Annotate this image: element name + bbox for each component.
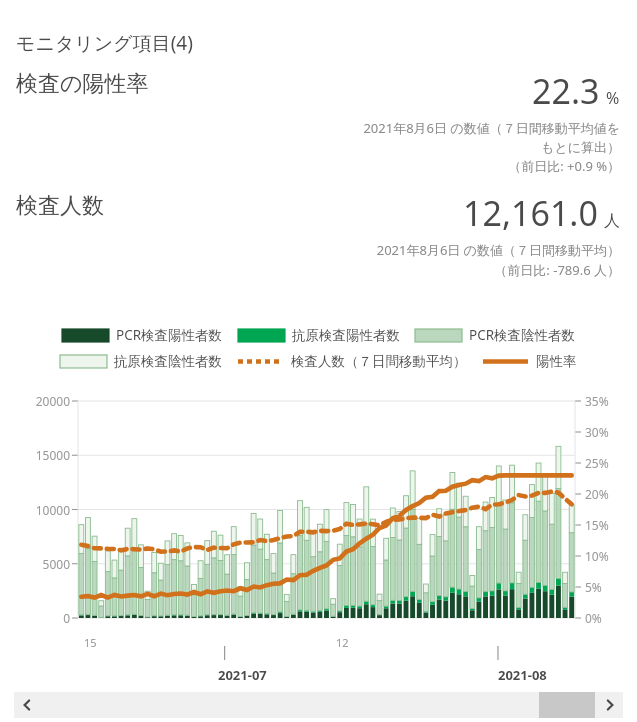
staticText: 5% bbox=[585, 579, 602, 595]
staticText: 20000 bbox=[0, 393, 70, 409]
staticText: PCR検査陰性者数 bbox=[469, 326, 576, 344]
staticText: 検査人数 bbox=[16, 192, 104, 220]
staticText: 5000 bbox=[0, 556, 70, 572]
button[interactable]: Scroll left bbox=[14, 692, 40, 718]
staticText: 15000 bbox=[0, 447, 70, 463]
staticText: もとに算出） bbox=[541, 139, 620, 155]
staticText: 12 bbox=[336, 635, 349, 650]
staticText: （前日比: +0.9 %） bbox=[508, 157, 620, 175]
staticText: 12,161.0 bbox=[463, 190, 598, 236]
staticText: 0 bbox=[0, 610, 70, 626]
staticText: （前日比: -789.6 人） bbox=[494, 261, 620, 279]
staticText: 抗原検査陰性者数 bbox=[114, 353, 222, 370]
staticText: 2021-07 bbox=[218, 666, 267, 684]
staticText: 20% bbox=[585, 486, 609, 502]
staticText: 陽性率 bbox=[536, 353, 577, 370]
staticText: PCR検査陽性者数 bbox=[116, 326, 223, 344]
staticText: モニタリング項目(4) bbox=[16, 30, 193, 56]
staticText: 15% bbox=[585, 517, 609, 533]
staticText: 35% bbox=[585, 393, 609, 409]
staticText: 抗原検査陽性者数 bbox=[292, 327, 400, 344]
staticText: 25% bbox=[585, 455, 609, 471]
staticText: 人 bbox=[604, 211, 620, 231]
staticText: 0% bbox=[585, 610, 602, 626]
staticText: 15 bbox=[84, 635, 97, 650]
staticText: 検査人数（７日間移動平均） bbox=[291, 353, 467, 370]
staticText: 2021年8月6日 の数値（７日間移動平均値を bbox=[363, 119, 620, 137]
button[interactable]: Scroll right bbox=[597, 692, 623, 718]
staticText: 30% bbox=[585, 424, 609, 440]
staticText: % bbox=[606, 87, 620, 109]
staticText: 2021年8月6日 の数値（７日間移動平均） bbox=[376, 241, 620, 259]
staticText: 2021-08 bbox=[498, 666, 547, 684]
staticText: 10000 bbox=[0, 502, 70, 518]
staticText: 検査の陽性率 bbox=[16, 70, 149, 98]
staticText: 10% bbox=[585, 548, 609, 564]
staticText: 22.3 bbox=[532, 68, 600, 114]
